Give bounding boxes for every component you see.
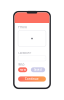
staticText: TAGS <box>18 63 24 66</box>
staticText: New <box>20 68 26 71</box>
button[interactable]: Saved <box>31 67 45 72</box>
staticText: Continue <box>25 77 39 81</box>
button[interactable]: Add photo <box>18 30 46 46</box>
button[interactable]: Continue <box>18 76 46 82</box>
button[interactable]: New <box>18 67 27 72</box>
staticText: Saved <box>34 68 42 71</box>
staticText: PHOTO <box>18 25 27 29</box>
staticText: CATEGORY <box>18 51 32 54</box>
